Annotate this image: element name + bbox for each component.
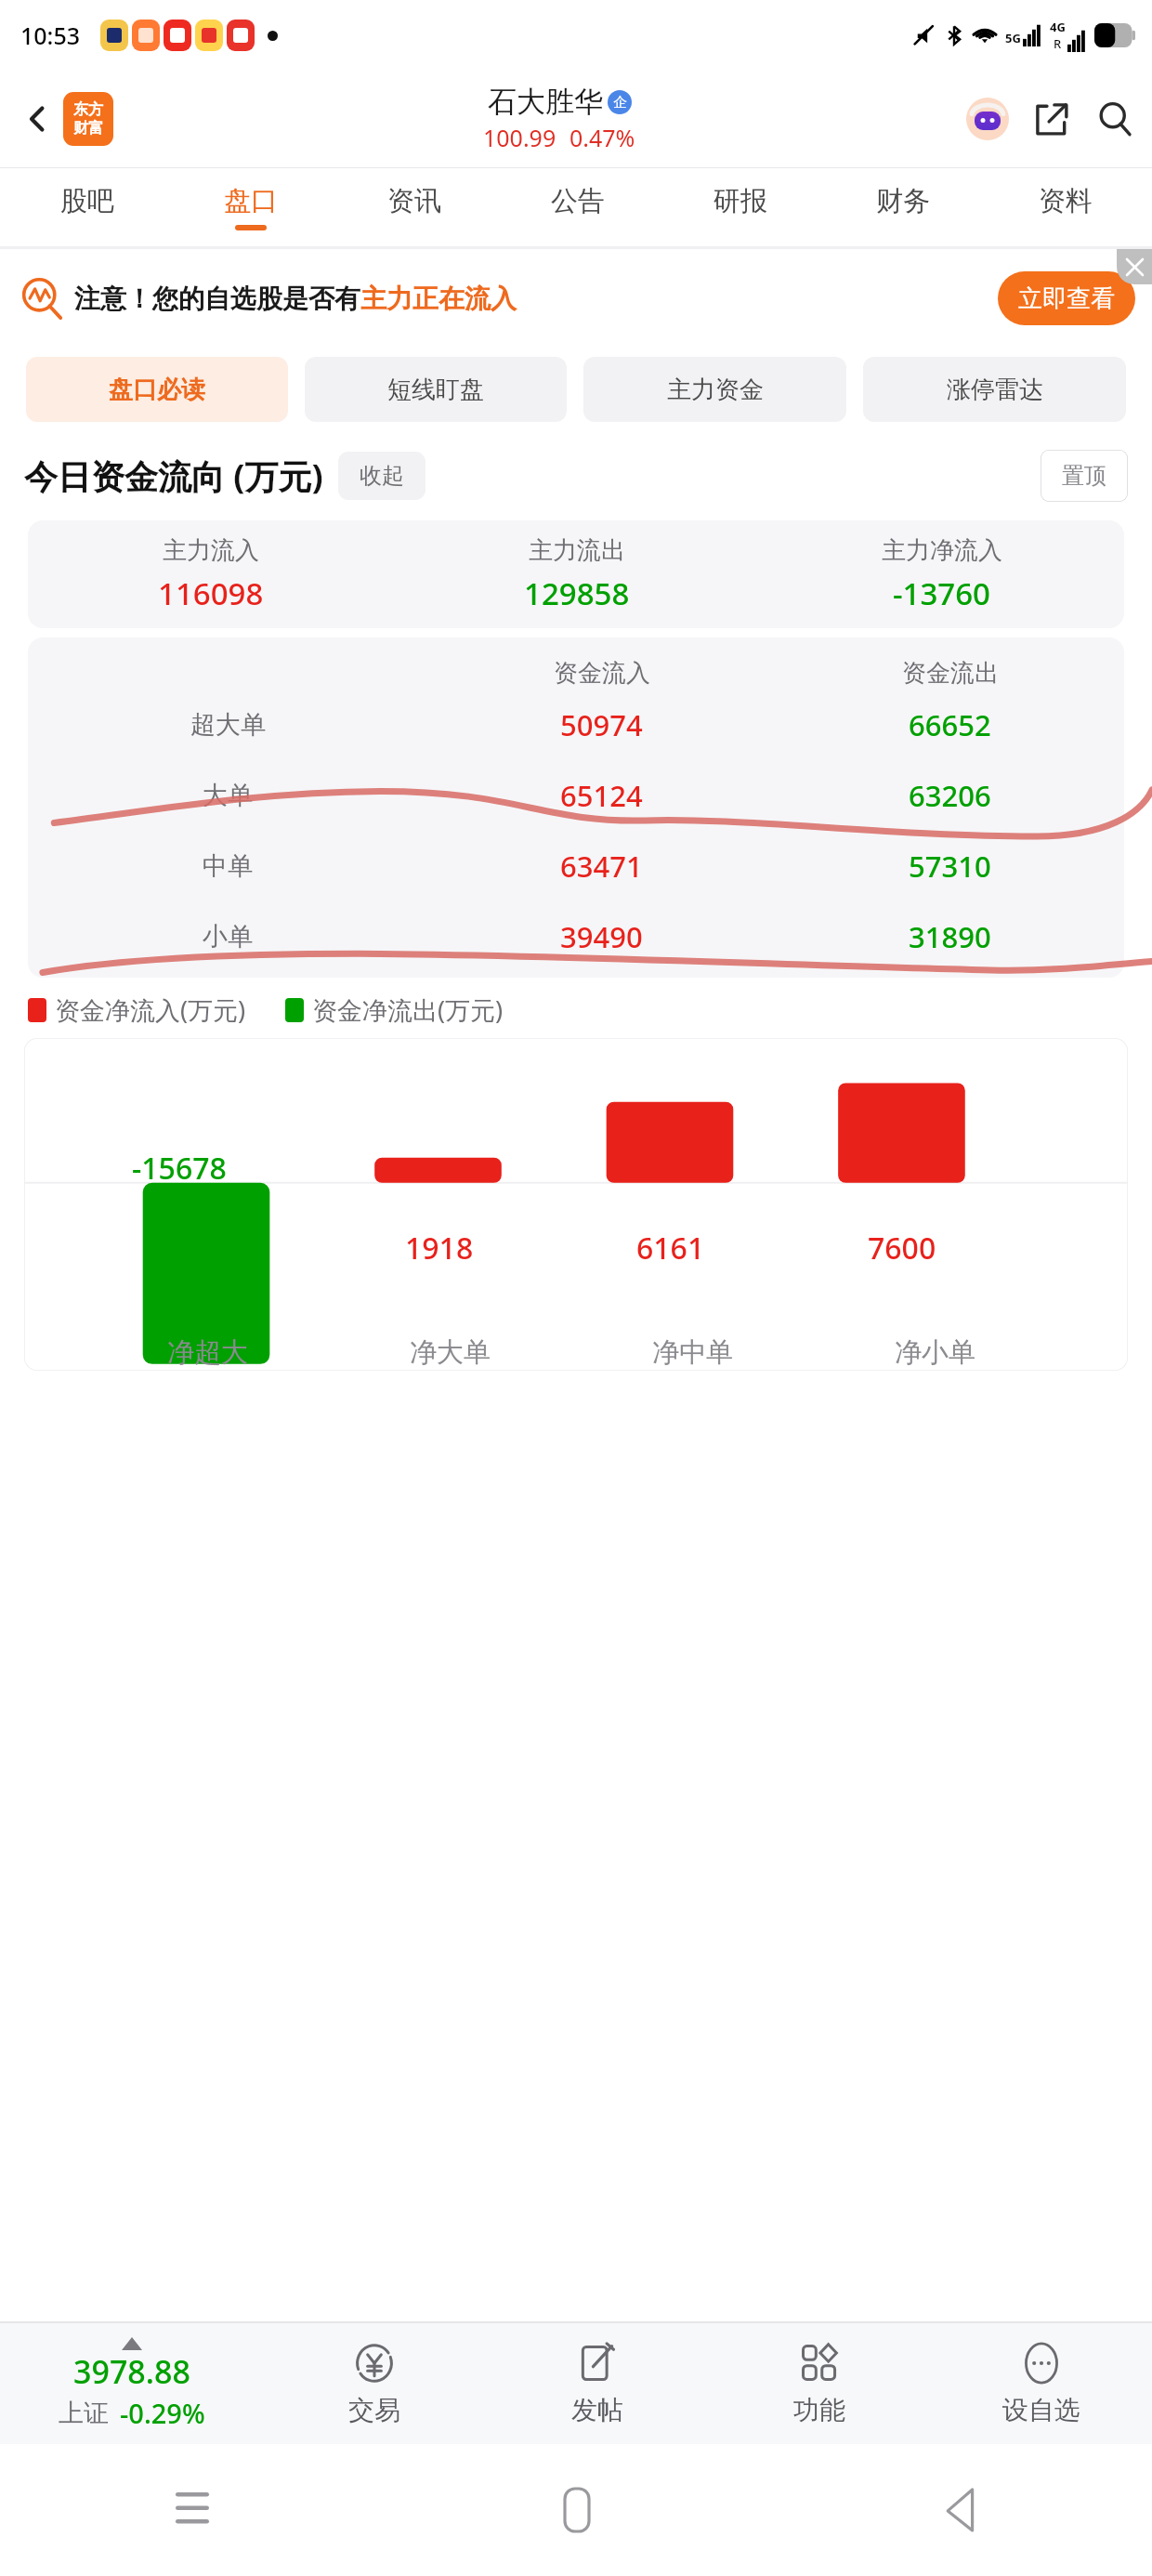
staticText: -13760	[893, 572, 990, 614]
staticText: 中单	[203, 850, 253, 882]
staticText: 设自选	[1002, 2394, 1080, 2426]
button[interactable]: Home	[385, 2444, 768, 2576]
staticText: 65124	[560, 776, 643, 815]
button[interactable]: 盘口	[169, 168, 333, 246]
staticText: 立即查看	[1018, 283, 1115, 314]
staticText: 今日资金流向 (万元)	[24, 453, 323, 499]
staticText: 资讯	[387, 184, 441, 218]
staticText: 石大胜华	[488, 84, 603, 120]
button[interactable]: 主力资金	[583, 357, 846, 422]
staticText: 63471	[560, 847, 643, 886]
button[interactable]: 资金流入	[28, 637, 1124, 978]
staticText: 大单	[203, 780, 253, 811]
button[interactable]: 盘口必读	[26, 357, 288, 422]
staticText: 功能	[793, 2394, 845, 2426]
staticText: 超大单	[190, 709, 266, 741]
button[interactable]: Search	[1091, 95, 1139, 143]
button[interactable]: 交易	[263, 2323, 486, 2444]
button[interactable]: Back	[11, 93, 63, 145]
staticText: 129858	[524, 572, 630, 614]
staticText: -0.29%	[120, 2395, 205, 2431]
button[interactable]: 财务	[821, 168, 984, 246]
staticText: 31890	[909, 917, 991, 956]
staticText: R	[1054, 35, 1062, 52]
staticText: -15678	[132, 1148, 227, 1189]
staticText: 6161	[636, 1228, 705, 1268]
button[interactable]: 功能	[708, 2323, 930, 2444]
staticText: 财富	[73, 119, 103, 138]
staticText: 主力流入	[163, 535, 259, 566]
staticText: 上证	[59, 2398, 109, 2429]
staticText: 1918	[405, 1228, 474, 1268]
staticText: 小单	[203, 921, 253, 953]
button[interactable]: 置顶	[1041, 450, 1128, 502]
staticText: 资金流入	[554, 658, 650, 689]
staticText: 研报	[713, 184, 767, 218]
button[interactable]: -15678	[24, 1038, 1128, 1371]
button[interactable]: 设自选	[930, 2323, 1152, 2444]
staticText: 公告	[551, 184, 605, 218]
staticText: 净大单	[410, 1335, 491, 1370]
staticText: 5G	[1005, 30, 1021, 46]
staticText: 盘口必读	[109, 375, 205, 405]
staticText: 主力净流入	[882, 535, 1002, 566]
button[interactable]: 研报	[659, 168, 821, 246]
staticText: 净中单	[652, 1335, 733, 1370]
button[interactable]: Share	[1028, 95, 1076, 143]
button[interactable]: 东方	[63, 92, 113, 146]
button[interactable]: 资讯	[333, 168, 496, 246]
button[interactable]: 立即查看	[998, 271, 1135, 325]
button[interactable]: 短线盯盘	[305, 357, 567, 422]
staticText: 主力正在流入	[360, 283, 517, 315]
staticText: 63206	[909, 776, 991, 815]
staticText: 116098	[158, 572, 264, 614]
staticText: 涨停雷达	[947, 375, 1043, 405]
staticText: 资金流出	[902, 658, 999, 689]
staticText: 资金净流出(万元)	[312, 992, 504, 1027]
staticText: 50974	[560, 705, 643, 744]
button[interactable]: Close	[1117, 249, 1152, 284]
staticText: 3978.88	[73, 2350, 190, 2393]
button[interactable]: 资料	[984, 168, 1146, 246]
staticText: 企	[613, 94, 627, 112]
staticText: 东方	[73, 100, 103, 119]
staticText: 净超大	[167, 1335, 248, 1370]
button[interactable]: Recents	[0, 2444, 385, 2576]
staticText: 置顶	[1062, 462, 1106, 490]
staticText: 66652	[909, 705, 991, 744]
button[interactable]: 公告	[496, 168, 659, 246]
staticText: 交易	[348, 2394, 400, 2426]
staticText: 0.47%	[569, 122, 635, 153]
staticText: 7600	[868, 1228, 936, 1268]
staticText: 主力资金	[667, 375, 764, 405]
button[interactable]: 股吧	[6, 168, 169, 246]
staticText: 盘口	[224, 184, 278, 218]
staticText: 净小单	[895, 1335, 975, 1370]
staticText: 39490	[560, 917, 643, 956]
button[interactable]: Back	[768, 2444, 1152, 2576]
button[interactable]: 注意！您的自选股是否有	[20, 249, 1135, 348]
staticText: 短线盯盘	[387, 375, 484, 405]
button[interactable]: 发帖	[486, 2323, 708, 2444]
button[interactable]: Assistant	[962, 94, 1013, 144]
staticText: 财务	[876, 184, 930, 218]
staticText: 主力流出	[529, 535, 625, 566]
button[interactable]: 收起	[338, 452, 425, 500]
staticText: 注意！您的自选股是否有	[74, 283, 360, 315]
staticText: 资金净流入(万元)	[55, 992, 246, 1027]
button[interactable]: 3978.88	[0, 2337, 263, 2431]
staticText: 4G	[1050, 19, 1066, 35]
button[interactable]: 主力流入	[28, 520, 1124, 628]
staticText: 100.99	[483, 122, 556, 153]
staticText: 股吧	[60, 184, 114, 218]
staticText: 10:53	[20, 20, 81, 51]
staticText: 收起	[360, 462, 404, 490]
staticText: 发帖	[571, 2394, 623, 2426]
staticText: 57310	[909, 847, 991, 886]
staticText: 资料	[1039, 184, 1093, 218]
button[interactable]: 涨停雷达	[863, 357, 1126, 422]
